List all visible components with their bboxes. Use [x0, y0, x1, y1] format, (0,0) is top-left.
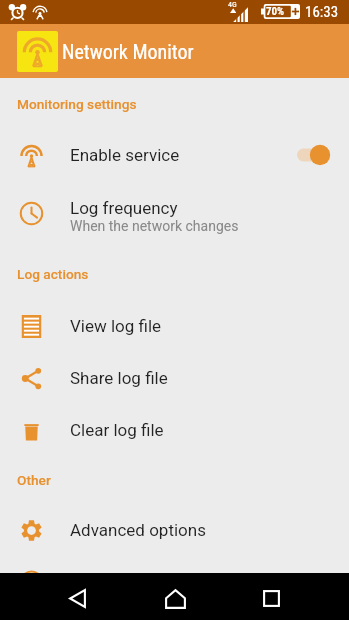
staticText: Share log file — [70, 368, 168, 388]
staticText: Network Monitor — [62, 40, 194, 63]
staticText: 70% — [266, 5, 285, 18]
staticText: Other — [17, 472, 51, 488]
button[interactable]: Log frequency — [0, 181, 349, 245]
button[interactable]: Enable service — [293, 141, 335, 169]
staticText: Enable service — [70, 145, 180, 165]
button[interactable]: Share log file — [0, 352, 349, 404]
staticText: Clear log file — [70, 420, 164, 440]
staticText: Log frequency — [70, 198, 178, 218]
staticText: When the network changes — [70, 218, 239, 234]
button[interactable]: Recent apps — [248, 575, 295, 620]
button[interactable]: Back — [54, 575, 101, 620]
staticText: View log file — [70, 316, 162, 336]
button[interactable]: Enable service — [0, 129, 349, 181]
button[interactable]: Clear log file — [0, 404, 349, 456]
button[interactable]: Home — [152, 575, 199, 620]
staticText: 4G — [228, 0, 237, 9]
button[interactable]: View log file — [0, 300, 349, 352]
button[interactable]: Advanced options — [0, 504, 349, 556]
staticText: Advanced options — [70, 520, 206, 540]
staticText: Log actions — [17, 266, 89, 282]
staticText: 16:33 — [305, 3, 339, 21]
button[interactable]: About — [0, 556, 349, 573]
staticText: Monitoring settings — [17, 96, 137, 112]
